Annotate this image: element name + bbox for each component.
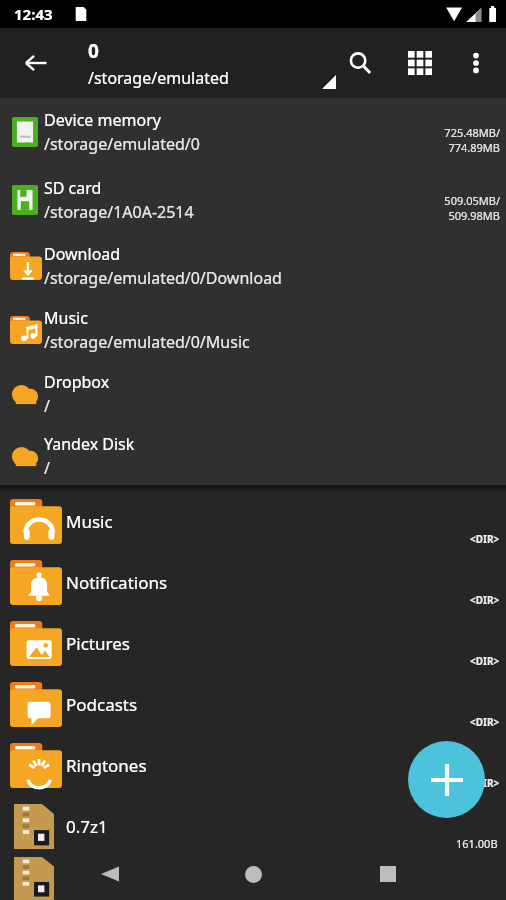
button[interactable]: Back bbox=[86, 850, 134, 898]
staticText: 161.00B bbox=[456, 836, 498, 851]
button[interactable]: Download bbox=[0, 234, 506, 298]
button[interactable]: Grid view bbox=[396, 39, 444, 87]
button[interactable]: Music bbox=[0, 298, 506, 362]
staticText: /storage/emulated/0/Download bbox=[44, 267, 282, 289]
button[interactable]: Device memory bbox=[0, 98, 506, 166]
button[interactable] bbox=[0, 857, 506, 900]
staticText: Device memory bbox=[44, 109, 161, 131]
staticText: Dropbox bbox=[44, 371, 110, 393]
staticText: /storage/1A0A-2514 bbox=[44, 201, 194, 223]
staticText: /storage/emulated/0 bbox=[44, 133, 200, 155]
staticText: Music bbox=[66, 510, 113, 533]
staticText: / bbox=[44, 457, 50, 479]
button[interactable]: Ringtones bbox=[0, 735, 506, 796]
staticText: <DIR> bbox=[470, 593, 500, 607]
staticText: Movies bbox=[66, 449, 123, 472]
button[interactable]: Recents bbox=[364, 850, 412, 898]
staticText: 12:43 bbox=[14, 4, 53, 24]
button[interactable]: 0.7z1 bbox=[0, 796, 506, 857]
staticText: <DIR> bbox=[470, 654, 500, 668]
staticText: Pictures bbox=[66, 632, 130, 655]
button[interactable]: Pictures bbox=[0, 613, 506, 674]
button[interactable]: Yandex Disk bbox=[0, 426, 506, 485]
button[interactable]: Podcasts bbox=[0, 674, 506, 735]
staticText: Download bbox=[44, 243, 121, 265]
staticText: Notifications bbox=[66, 571, 168, 594]
staticText: 774.89MB bbox=[448, 140, 500, 155]
staticText: Music bbox=[44, 307, 88, 329]
staticText: Ringtones bbox=[66, 754, 147, 777]
staticText: 0 bbox=[88, 38, 99, 64]
button[interactable]: 0 bbox=[88, 38, 328, 89]
staticText: 725.48MB/ bbox=[444, 125, 500, 140]
button[interactable]: Back bbox=[14, 41, 58, 85]
staticText: SD card bbox=[44, 177, 102, 199]
button[interactable]: Music bbox=[0, 491, 506, 552]
staticText: / bbox=[44, 395, 50, 417]
button[interactable]: SD card bbox=[0, 166, 506, 234]
staticText: Podcasts bbox=[66, 693, 138, 716]
staticText: <DIR> bbox=[470, 776, 500, 790]
button[interactable]: Movies bbox=[0, 430, 506, 491]
staticText: /storage/emulated bbox=[88, 67, 229, 89]
button[interactable]: Dropbox bbox=[0, 362, 506, 426]
button[interactable]: Notifications bbox=[0, 552, 506, 613]
staticText: 509.05MB/ bbox=[444, 193, 500, 208]
staticText: 0.7z1 bbox=[66, 815, 108, 838]
staticText: Yandex Disk bbox=[44, 433, 135, 455]
button[interactable]: Search bbox=[336, 39, 384, 87]
button[interactable]: Add bbox=[408, 741, 485, 818]
button[interactable]: More options bbox=[454, 41, 498, 85]
staticText: /storage/emulated/0/Music bbox=[44, 331, 250, 353]
staticText: 509.98MB bbox=[448, 208, 500, 223]
staticText: <DIR> bbox=[470, 715, 500, 729]
staticText: <DIR> bbox=[470, 532, 500, 546]
button[interactable]: Home bbox=[229, 850, 277, 898]
